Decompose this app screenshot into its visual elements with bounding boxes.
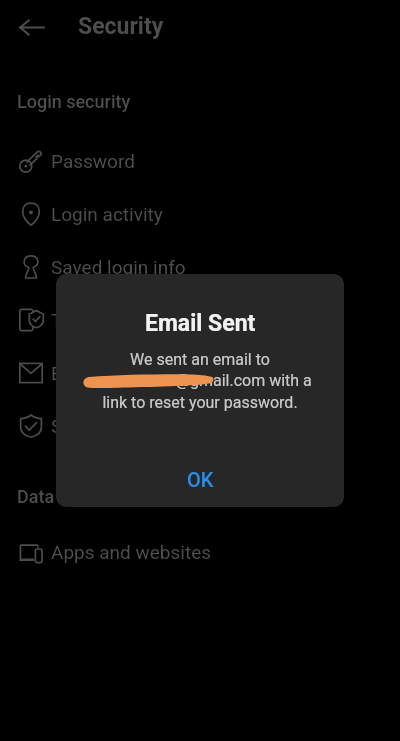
staticText: Email Sent [145,310,256,337]
button[interactable]: Password [0,134,400,187]
staticText: Emails from Instagram [51,362,244,384]
staticText: Login activity [51,203,163,225]
staticText: OK [187,468,214,491]
button[interactable]: OK [173,460,228,499]
button[interactable]: Saved login info [0,240,400,293]
button[interactable]: Two-factor authentication [0,293,400,346]
button[interactable]: Login activity [0,187,400,240]
staticText: Security [78,13,164,40]
button[interactable]: Back [14,9,50,45]
button[interactable]: Emails from Instagram [0,346,400,399]
staticText: Apps and websites [51,541,212,563]
staticText: Data and permissions [17,486,192,507]
button[interactable]: Security Checkup [0,399,400,452]
staticText: Security Checkup [51,415,198,437]
staticText: Password [51,150,135,172]
staticText: Two-factor authentication [51,309,269,331]
staticText: Saved login info [51,256,186,278]
button[interactable]: Apps and websites [0,525,400,578]
staticText: Login security [17,91,131,112]
staticText: We sent an email to xxxxxxxxxxx@gmail.co… [80,350,320,412]
